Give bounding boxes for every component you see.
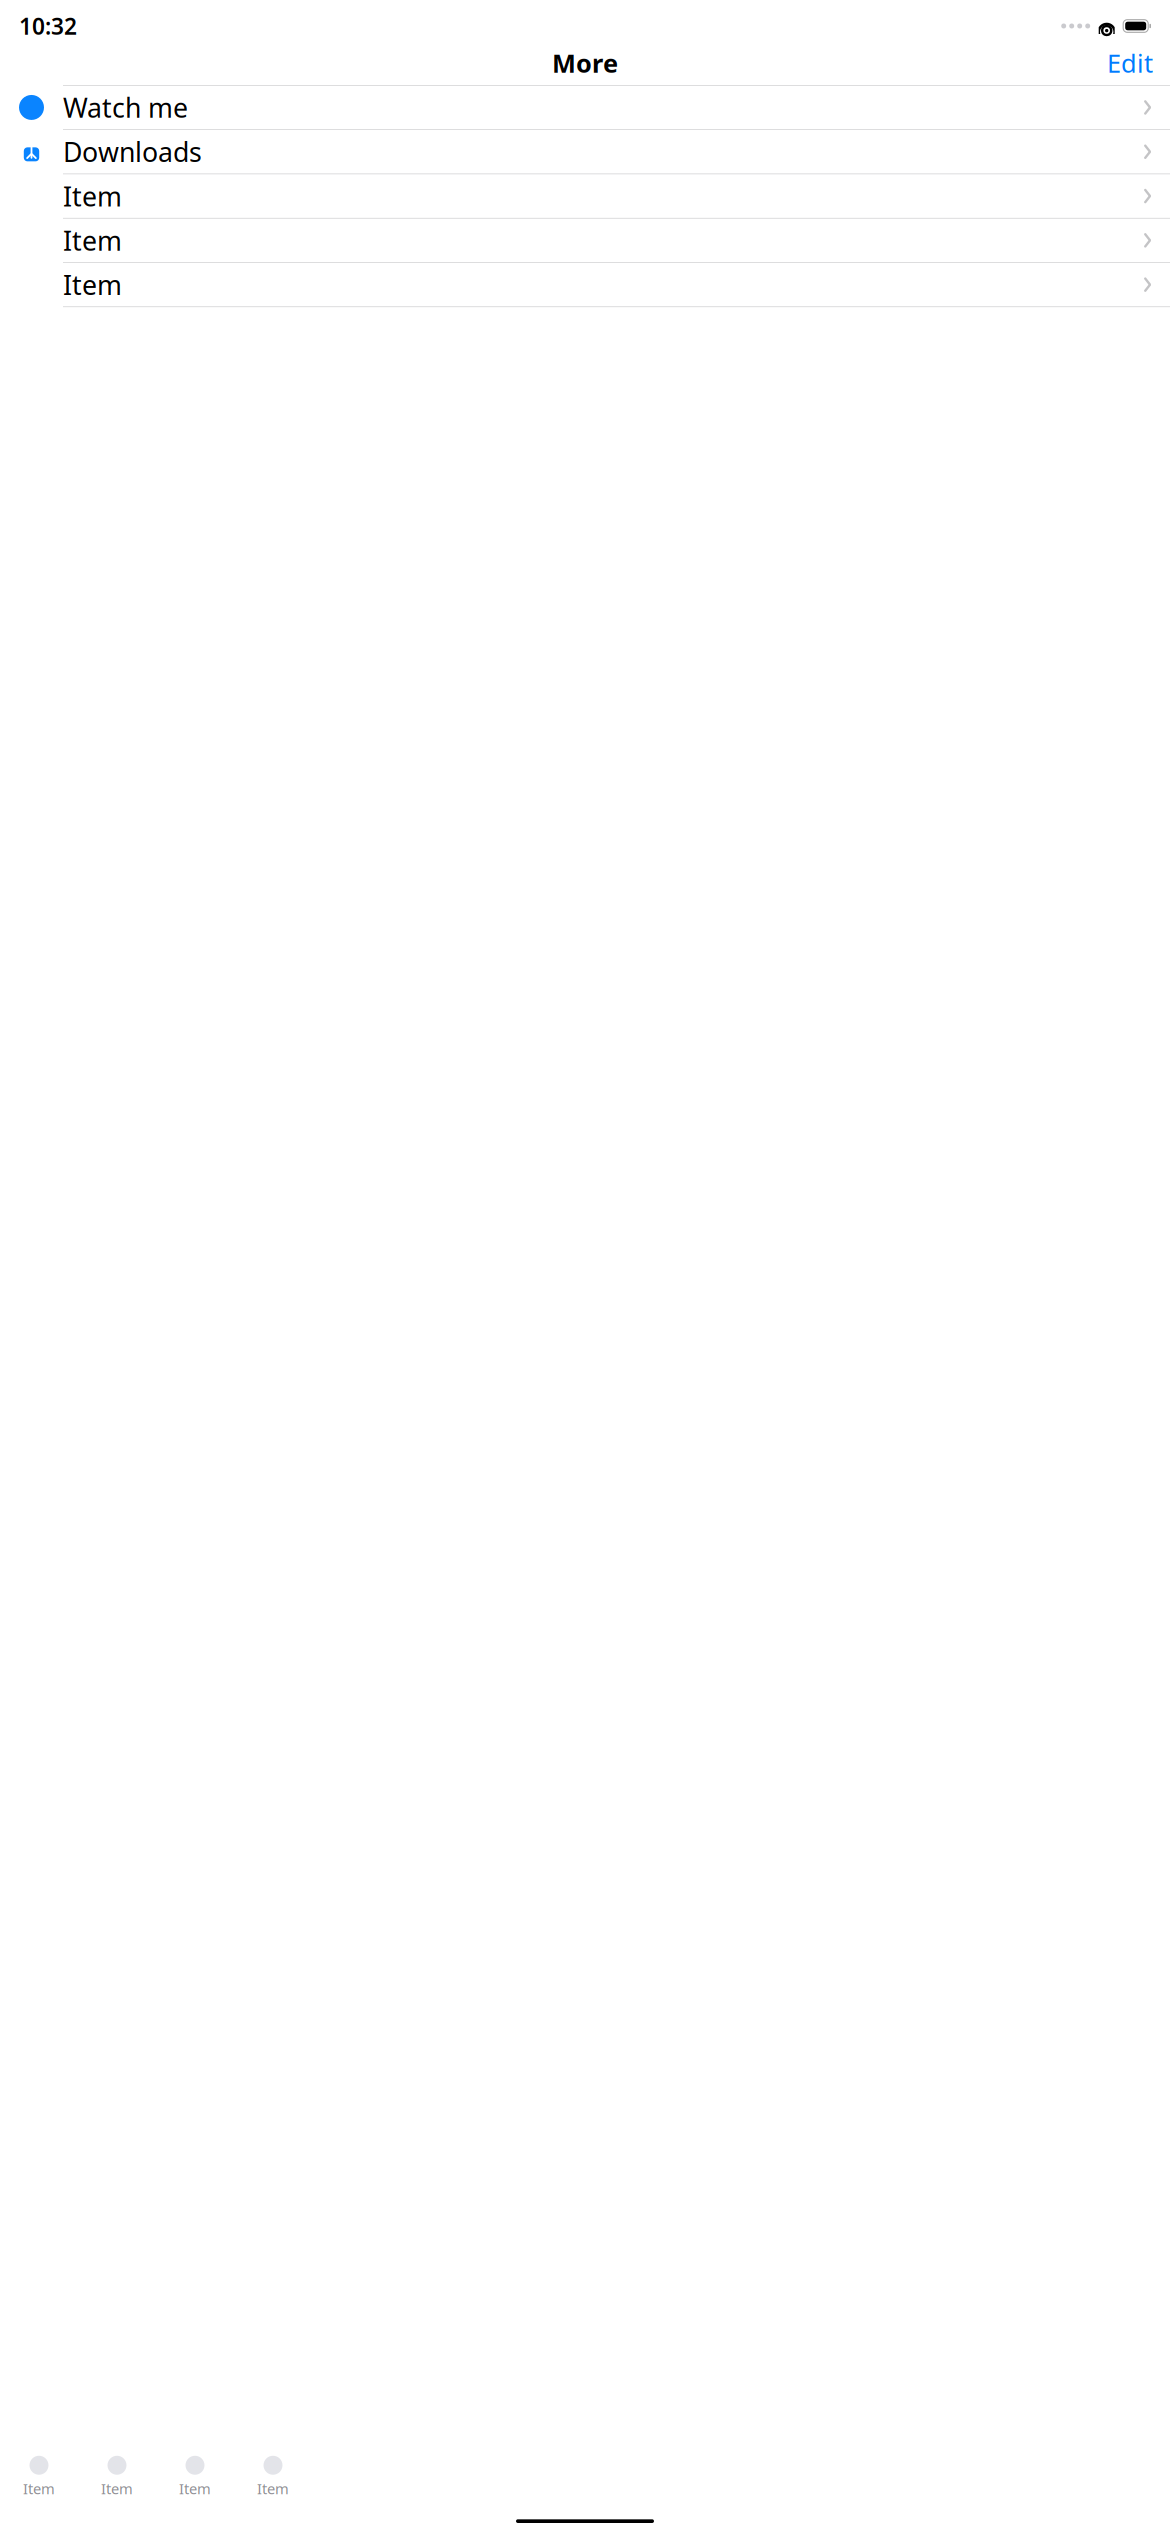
staticText: Item: [257, 2479, 289, 2498]
staticText: Watch me: [63, 90, 188, 125]
button[interactable]: Item: [0, 174, 1170, 218]
staticText: Item: [63, 267, 122, 302]
staticText: Item: [63, 223, 122, 258]
staticText: 10:32: [19, 11, 77, 41]
button[interactable]: Downloads: [0, 130, 1170, 174]
button[interactable]: Item: [0, 2449, 78, 2498]
staticText: Downloads: [63, 134, 202, 169]
button[interactable]: Item: [0, 218, 1170, 263]
button[interactable]: Edit: [1099, 40, 1161, 86]
button[interactable]: Item: [0, 263, 1170, 307]
button[interactable]: Item: [78, 2449, 156, 2498]
staticText: Item: [101, 2479, 133, 2498]
button[interactable]: Item: [156, 2449, 234, 2498]
staticText: Item: [63, 178, 122, 214]
staticText: Item: [179, 2479, 211, 2498]
button[interactable]: Watch me: [0, 86, 1170, 130]
button[interactable]: Item: [234, 2449, 312, 2498]
staticText: More: [552, 46, 618, 80]
staticText: Edit: [1107, 46, 1153, 80]
staticText: Item: [23, 2479, 55, 2498]
